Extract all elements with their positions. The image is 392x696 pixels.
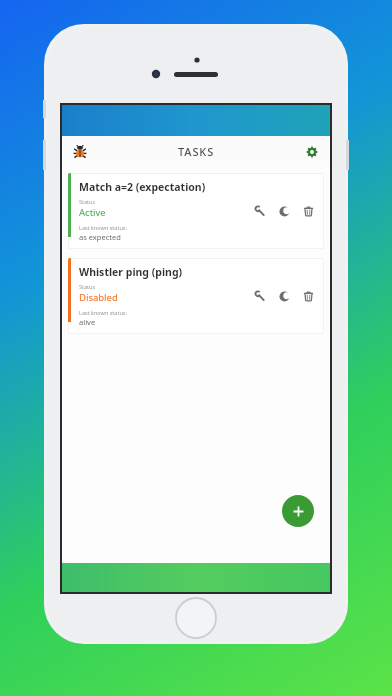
staticText: Whistler ping (ping) — [79, 265, 183, 279]
staticText: Last known status: — [79, 224, 127, 231]
button[interactable]: Delete — [300, 203, 316, 219]
button[interactable]: Configure — [252, 288, 268, 304]
button[interactable]: Add task — [282, 495, 314, 527]
button[interactable]: Delete — [300, 288, 316, 304]
staticText: Active — [79, 206, 106, 219]
button[interactable]: Settings — [302, 142, 322, 162]
staticText: TASKS — [178, 144, 215, 159]
button[interactable]: Schedule — [276, 203, 292, 219]
staticText: Last known status: — [79, 309, 127, 316]
staticText: Disabled — [79, 291, 118, 304]
button[interactable]: App icon — [70, 142, 90, 162]
staticText: Status — [79, 198, 96, 205]
staticText: Match a=2 (expectation) — [79, 180, 206, 194]
button[interactable]: Schedule — [276, 288, 292, 304]
button[interactable]: Configure — [252, 203, 268, 219]
button[interactable]: Whistler ping (ping) — [68, 258, 324, 334]
staticText: as expected — [79, 232, 121, 242]
staticText: alive — [79, 317, 96, 327]
button[interactable]: Match a=2 (expectation) — [68, 173, 324, 249]
button[interactable]: Bottom bar — [62, 563, 330, 592]
staticText: Status — [79, 283, 96, 290]
